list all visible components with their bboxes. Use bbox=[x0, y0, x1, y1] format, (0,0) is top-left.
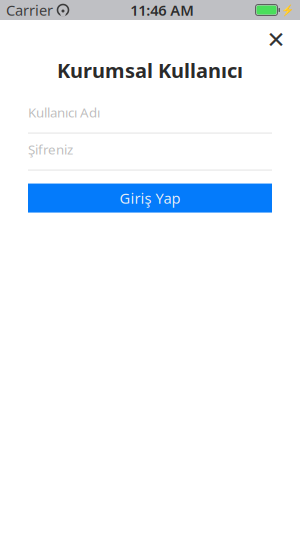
staticText bbox=[53, 0, 57, 20]
staticText: Şifreniz bbox=[28, 141, 73, 158]
staticText: Kurumsal Kullanıcı bbox=[57, 57, 243, 84]
button[interactable]: Giriş Yap bbox=[28, 184, 272, 213]
staticText: Giriş Yap bbox=[119, 188, 180, 208]
staticText: ✕ bbox=[266, 27, 285, 53]
staticText: Kullanıcı Adı bbox=[28, 104, 100, 121]
button[interactable]: Close bbox=[259, 25, 293, 55]
staticText: Carrier bbox=[6, 0, 53, 20]
staticText: ⚡ bbox=[281, 4, 294, 16]
staticText: 11:46 AM bbox=[130, 0, 194, 20]
